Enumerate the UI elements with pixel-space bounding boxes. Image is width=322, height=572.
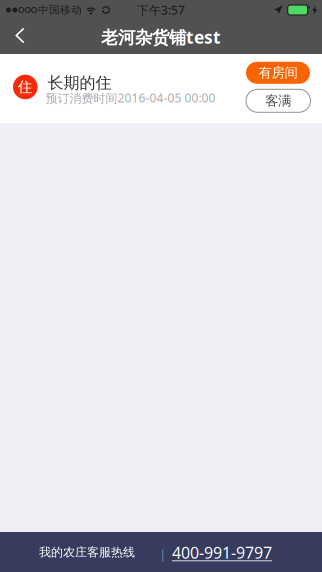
staticText: 客满 [265,93,291,109]
staticText: 中国移动 [38,3,82,16]
staticText: | [159,545,166,563]
staticText: 有房间 [258,65,297,81]
staticText: 我的农庄客服热线 [39,545,135,560]
staticText: 长期的住 [48,73,112,93]
staticText: 预订消费时间2016-04-05 00:00 [46,90,216,106]
staticText: 下午3:57 [137,2,185,18]
button[interactable]: Back [0,20,44,54]
button[interactable]: 400-991-9797 [170,536,274,569]
staticText: 400-991-9797 [172,542,272,563]
button[interactable]: 住 [0,54,322,123]
staticText: 老河杂货铺test [101,25,221,48]
staticText: 住 [18,78,33,96]
button[interactable]: 有房间 [246,62,310,84]
button[interactable]: 客满 [246,89,310,112]
